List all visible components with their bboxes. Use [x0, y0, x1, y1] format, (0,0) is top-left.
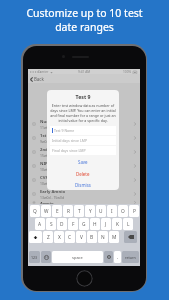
staticText: space [72, 255, 83, 260]
button[interactable]: F [68, 218, 78, 230]
staticText: 123 [31, 255, 38, 260]
staticText: Early Amnio [40, 189, 66, 195]
button[interactable]: Emoji [41, 251, 51, 263]
button[interactable]: Save [47, 156, 119, 168]
staticText: Test 9 [47, 93, 119, 100]
staticText: I [111, 208, 113, 215]
button[interactable]: N [98, 231, 108, 243]
staticText: . [117, 254, 119, 261]
staticText: 9w0d - 13w6d [40, 139, 63, 144]
button[interactable]: M [109, 231, 119, 243]
staticText: CVS [40, 175, 48, 181]
button[interactable]: A [35, 218, 45, 230]
staticText: NIPT [40, 161, 51, 167]
staticText: Y [89, 208, 92, 215]
staticText: O [121, 208, 125, 215]
staticText: V [80, 234, 83, 241]
button[interactable]: I [107, 205, 117, 217]
button[interactable]: O [118, 205, 128, 217]
staticText: 1st Tri [40, 133, 53, 139]
button[interactable]: P [129, 205, 139, 217]
staticText: R [67, 208, 70, 215]
staticText: T [78, 208, 81, 215]
button[interactable]: Q [30, 205, 40, 217]
staticText: Z [47, 234, 50, 241]
staticText: U [99, 208, 103, 215]
button[interactable]: Backspace [124, 231, 137, 243]
button[interactable]: return [122, 251, 139, 263]
staticText: 11w0d - 13w6d [40, 125, 64, 130]
button[interactable]: G [79, 218, 89, 230]
button[interactable]: Nuchal [28, 117, 140, 131]
button[interactable]: Back [30, 76, 44, 82]
button[interactable]: C [65, 231, 75, 243]
staticText: N [101, 234, 105, 241]
staticText: 9:41 AM [78, 70, 91, 74]
staticText: S [50, 221, 53, 228]
staticText: 10w0d - 13w6d [40, 181, 64, 186]
staticText: X [58, 234, 61, 241]
staticText: B [90, 234, 94, 241]
button[interactable]: Test 9 Name [50, 126, 116, 135]
staticText: Delete [76, 171, 90, 177]
staticText: Nuchal [40, 119, 55, 125]
button[interactable]: R [63, 205, 73, 217]
staticText: H [93, 221, 97, 228]
button[interactable]: S [46, 218, 56, 230]
staticText: return [125, 255, 136, 260]
staticText: Amnio [40, 201, 54, 204]
button[interactable]: NIPT [28, 159, 140, 173]
button[interactable]: 123 [29, 251, 40, 263]
button[interactable]: Shift [29, 231, 42, 243]
button[interactable]: J [101, 218, 111, 230]
staticText: Save [78, 159, 88, 165]
button[interactable]: W [41, 205, 51, 217]
staticText: K [116, 221, 119, 228]
staticText: C [68, 234, 72, 241]
button[interactable]: Y [85, 205, 95, 217]
staticText: Initial days since LMP [52, 138, 88, 143]
button[interactable]: Dismiss [47, 180, 119, 190]
staticText: F [72, 221, 75, 228]
button[interactable]: Initial days since LMP [50, 136, 116, 145]
button[interactable]: 1st Tri [28, 131, 140, 145]
button[interactable]: Delete [47, 168, 119, 180]
staticText: A [38, 221, 42, 228]
staticText: Final days since LMP [52, 148, 86, 153]
staticText: 100% [123, 70, 132, 74]
button[interactable]: V [76, 231, 86, 243]
staticText: M [112, 234, 117, 241]
staticText: E [56, 208, 59, 215]
button[interactable]: Home [76, 270, 93, 287]
button[interactable]: . [114, 251, 121, 263]
staticText: 13w0d - 15w0d [40, 195, 64, 200]
button[interactable]: D [57, 218, 67, 230]
button[interactable]: Z [43, 231, 53, 243]
button[interactable]: CVS [28, 173, 140, 187]
staticText: J [105, 221, 107, 228]
button[interactable]: Early Amnio [28, 187, 140, 201]
staticText: Enter test window data as number of days… [50, 103, 116, 123]
staticText: G [82, 221, 86, 228]
button[interactable]: space [52, 251, 103, 263]
staticText: Customize up to 10 test [26, 6, 143, 20]
button[interactable]: T [74, 205, 84, 217]
button[interactable]: K [112, 218, 122, 230]
button[interactable]: E [52, 205, 62, 217]
button[interactable]: B [87, 231, 97, 243]
staticText: date ranges [55, 20, 114, 34]
staticText: Q [33, 208, 37, 215]
button[interactable]: Amnio [28, 201, 140, 204]
staticText: 2nd Tri [40, 147, 55, 153]
staticText: Dismiss [75, 182, 91, 188]
staticText: Test 9 Name [54, 128, 75, 133]
button[interactable]: U [96, 205, 106, 217]
button[interactable]: L [123, 218, 133, 230]
staticText: P [133, 208, 136, 215]
button[interactable]: Dictation [104, 251, 113, 263]
button[interactable]: 2nd Tri [28, 145, 140, 159]
staticText: 10w0d - 22w0d [40, 167, 64, 172]
button[interactable]: Final days since LMP [50, 146, 116, 155]
button[interactable]: X [54, 231, 64, 243]
button[interactable]: H [90, 218, 100, 230]
